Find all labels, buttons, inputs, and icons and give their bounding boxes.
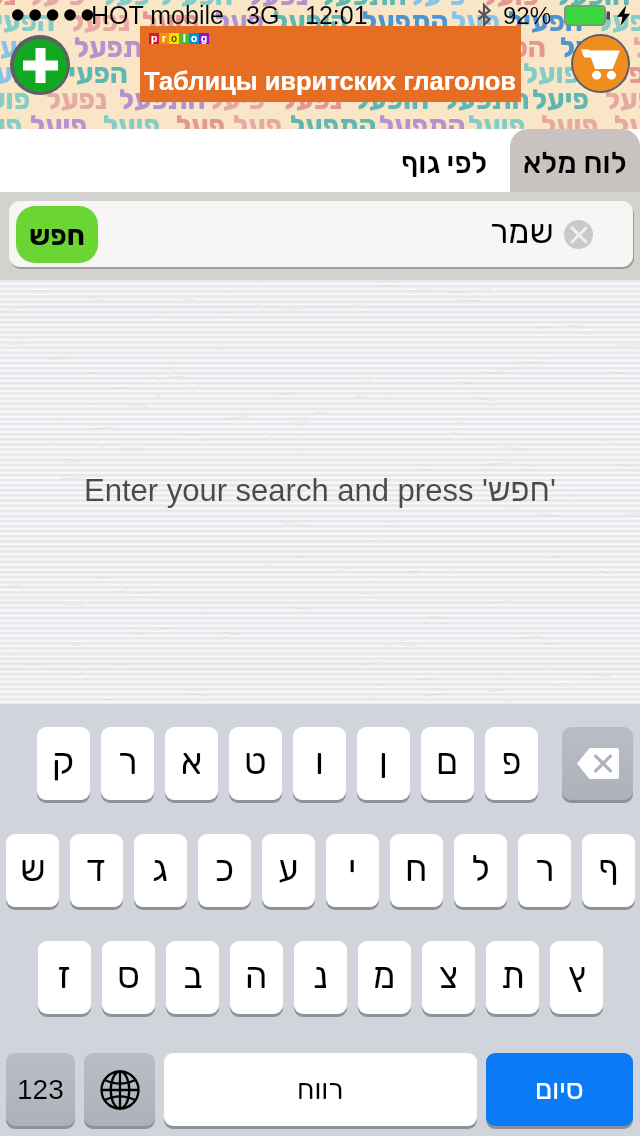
button[interactable]: ץ — [550, 941, 603, 1014]
staticText: י — [348, 847, 357, 890]
button[interactable]: ט — [229, 727, 282, 800]
staticText: התפעל — [290, 109, 377, 142]
button[interactable]: ק — [37, 727, 90, 800]
staticText: נפעל — [46, 83, 108, 116]
staticText: התפעל — [379, 109, 466, 142]
staticText: ן — [379, 740, 388, 783]
staticText: נפעל — [163, 31, 225, 64]
staticText: פיעל — [208, 83, 265, 116]
button[interactable]: ש — [6, 834, 59, 907]
staticText: הופעל — [273, 5, 349, 38]
staticText: הפעיל — [508, 5, 583, 38]
staticText: נ — [313, 954, 328, 997]
button[interactable]: מ — [358, 941, 411, 1014]
staticText: o — [191, 33, 198, 44]
staticText: ה — [245, 954, 268, 997]
staticText: פיעל — [409, 0, 466, 12]
button[interactable]: ד — [70, 834, 123, 907]
button[interactable]: לוח מלא — [510, 129, 640, 192]
staticText: HOT mobile — [91, 1, 224, 29]
button[interactable]: חפש — [16, 206, 98, 263]
staticText: r — [162, 33, 166, 44]
staticText: 123 — [17, 1074, 64, 1105]
button[interactable]: לפי גוף — [380, 129, 508, 192]
button[interactable]: ף — [582, 834, 635, 907]
button[interactable]: Add — [10, 35, 70, 95]
staticText: פעל — [101, 0, 150, 12]
staticText: לוח מלא — [523, 145, 627, 181]
button[interactable]: ה — [230, 941, 283, 1014]
staticText: התפעל — [597, 5, 640, 38]
staticText: ו — [315, 740, 324, 783]
staticText: התפעל — [362, 5, 449, 38]
button[interactable]: ס — [102, 941, 155, 1014]
staticText: ף — [598, 847, 619, 890]
button[interactable]: Clear text — [564, 220, 593, 249]
staticText: הופעל — [0, 31, 61, 64]
staticText: l — [183, 33, 186, 44]
staticText: נפעל — [69, 5, 131, 38]
button[interactable]: Shopping cart — [571, 34, 630, 93]
staticText: פעל — [176, 109, 225, 142]
staticText: הופעל — [555, 0, 631, 12]
button[interactable]: Backspace — [562, 727, 633, 800]
staticText: א — [181, 740, 203, 783]
staticText: פועל — [482, 0, 540, 12]
staticText: לפי גוף — [401, 145, 488, 181]
button[interactable]: ר — [101, 727, 154, 800]
button[interactable]: י — [326, 834, 379, 907]
staticText: ש — [20, 847, 46, 890]
button[interactable]: p — [140, 26, 521, 102]
button[interactable]: Change language — [84, 1053, 155, 1126]
staticText: Таблицы ивритских глаголов — [144, 67, 517, 95]
staticText: ט — [244, 740, 267, 783]
button[interactable]: ר — [518, 834, 571, 907]
staticText: Enter your search and press 'חפש' — [84, 473, 556, 508]
staticText: 12:01 — [305, 1, 368, 29]
staticText: הופעל — [434, 57, 510, 90]
staticText: פיעל — [30, 109, 87, 142]
staticText: פיעל — [532, 83, 589, 116]
staticText: פיעל — [28, 0, 85, 12]
staticText: נפעל — [0, 0, 17, 12]
staticText: פעל — [0, 109, 22, 142]
staticText: התפעל — [633, 31, 640, 64]
staticText: הופעל — [596, 57, 640, 90]
staticText: נפעל — [247, 0, 309, 12]
button[interactable]: פ — [485, 727, 538, 800]
button[interactable]: נ — [294, 941, 347, 1014]
button[interactable]: ן — [357, 727, 410, 800]
button[interactable]: ח — [390, 834, 443, 907]
staticText: ק — [52, 740, 75, 783]
button[interactable]: ל — [454, 834, 507, 907]
button[interactable]: ז — [38, 941, 91, 1014]
button[interactable]: ת — [486, 941, 539, 1014]
staticText: הפעיל — [471, 31, 546, 64]
button[interactable]: ב — [166, 941, 219, 1014]
button[interactable]: ם — [421, 727, 474, 800]
button[interactable]: רווח — [164, 1053, 477, 1126]
button[interactable]: ע — [262, 834, 315, 907]
staticText: ז — [57, 954, 72, 997]
button[interactable]: כ — [198, 834, 251, 907]
staticText: רווח — [297, 1073, 344, 1106]
staticText: התפעל — [443, 83, 530, 116]
staticText: p — [151, 33, 158, 44]
staticText: פיעל — [272, 57, 329, 90]
staticText: ר — [535, 847, 555, 890]
button[interactable]: א — [165, 727, 218, 800]
staticText: סיום — [535, 1073, 584, 1106]
staticText: ר — [118, 740, 138, 783]
button[interactable]: צ — [422, 941, 475, 1014]
staticText: ע — [278, 847, 299, 890]
staticText: פעל — [233, 109, 282, 142]
button[interactable]: 123 — [6, 1053, 75, 1126]
staticText: הפעיל — [345, 57, 420, 90]
button[interactable]: ג — [134, 834, 187, 907]
button[interactable]: סיום — [486, 1053, 633, 1126]
staticText: ם — [436, 740, 459, 783]
staticText: פיעל — [560, 31, 617, 64]
button[interactable]: ו — [293, 727, 346, 800]
